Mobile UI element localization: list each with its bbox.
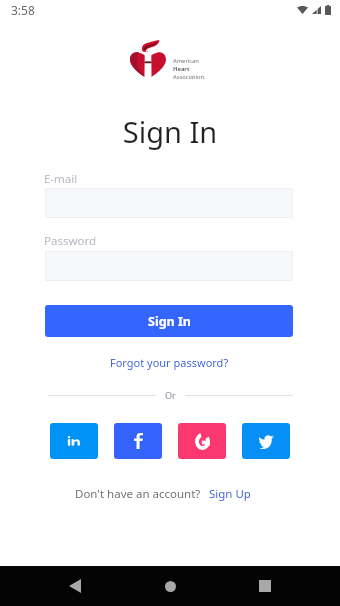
button[interactable] xyxy=(45,188,293,218)
staticText: 3:58 xyxy=(11,2,35,18)
button[interactable]: Home xyxy=(150,566,190,606)
staticText: Or xyxy=(165,389,176,401)
button[interactable]: Sign Up xyxy=(207,486,253,502)
button[interactable]: Sign in with Twitter xyxy=(242,423,290,459)
staticText: Heart xyxy=(173,65,190,73)
button[interactable]: Back xyxy=(55,566,95,606)
staticText: Sign Up xyxy=(209,486,251,502)
button[interactable]: Recents xyxy=(245,566,285,606)
button[interactable]: Sign In xyxy=(45,305,293,337)
staticText: Password xyxy=(44,233,97,249)
button[interactable]: Sign in with Facebook xyxy=(114,423,162,459)
staticText: Sign In xyxy=(148,313,191,330)
staticText: American xyxy=(173,57,199,65)
staticText: Forgot your password? xyxy=(110,355,229,370)
button[interactable]: Sign in with Google xyxy=(178,423,226,459)
staticText: Sign In xyxy=(0,112,340,151)
staticText: Don't have an account? xyxy=(75,486,201,502)
button[interactable] xyxy=(45,251,293,281)
staticText: E-mail xyxy=(44,171,78,187)
button[interactable]: Sign in with LinkedIn xyxy=(50,423,98,459)
staticText: Association. xyxy=(173,73,206,81)
button[interactable]: Forgot your password? xyxy=(106,354,233,371)
